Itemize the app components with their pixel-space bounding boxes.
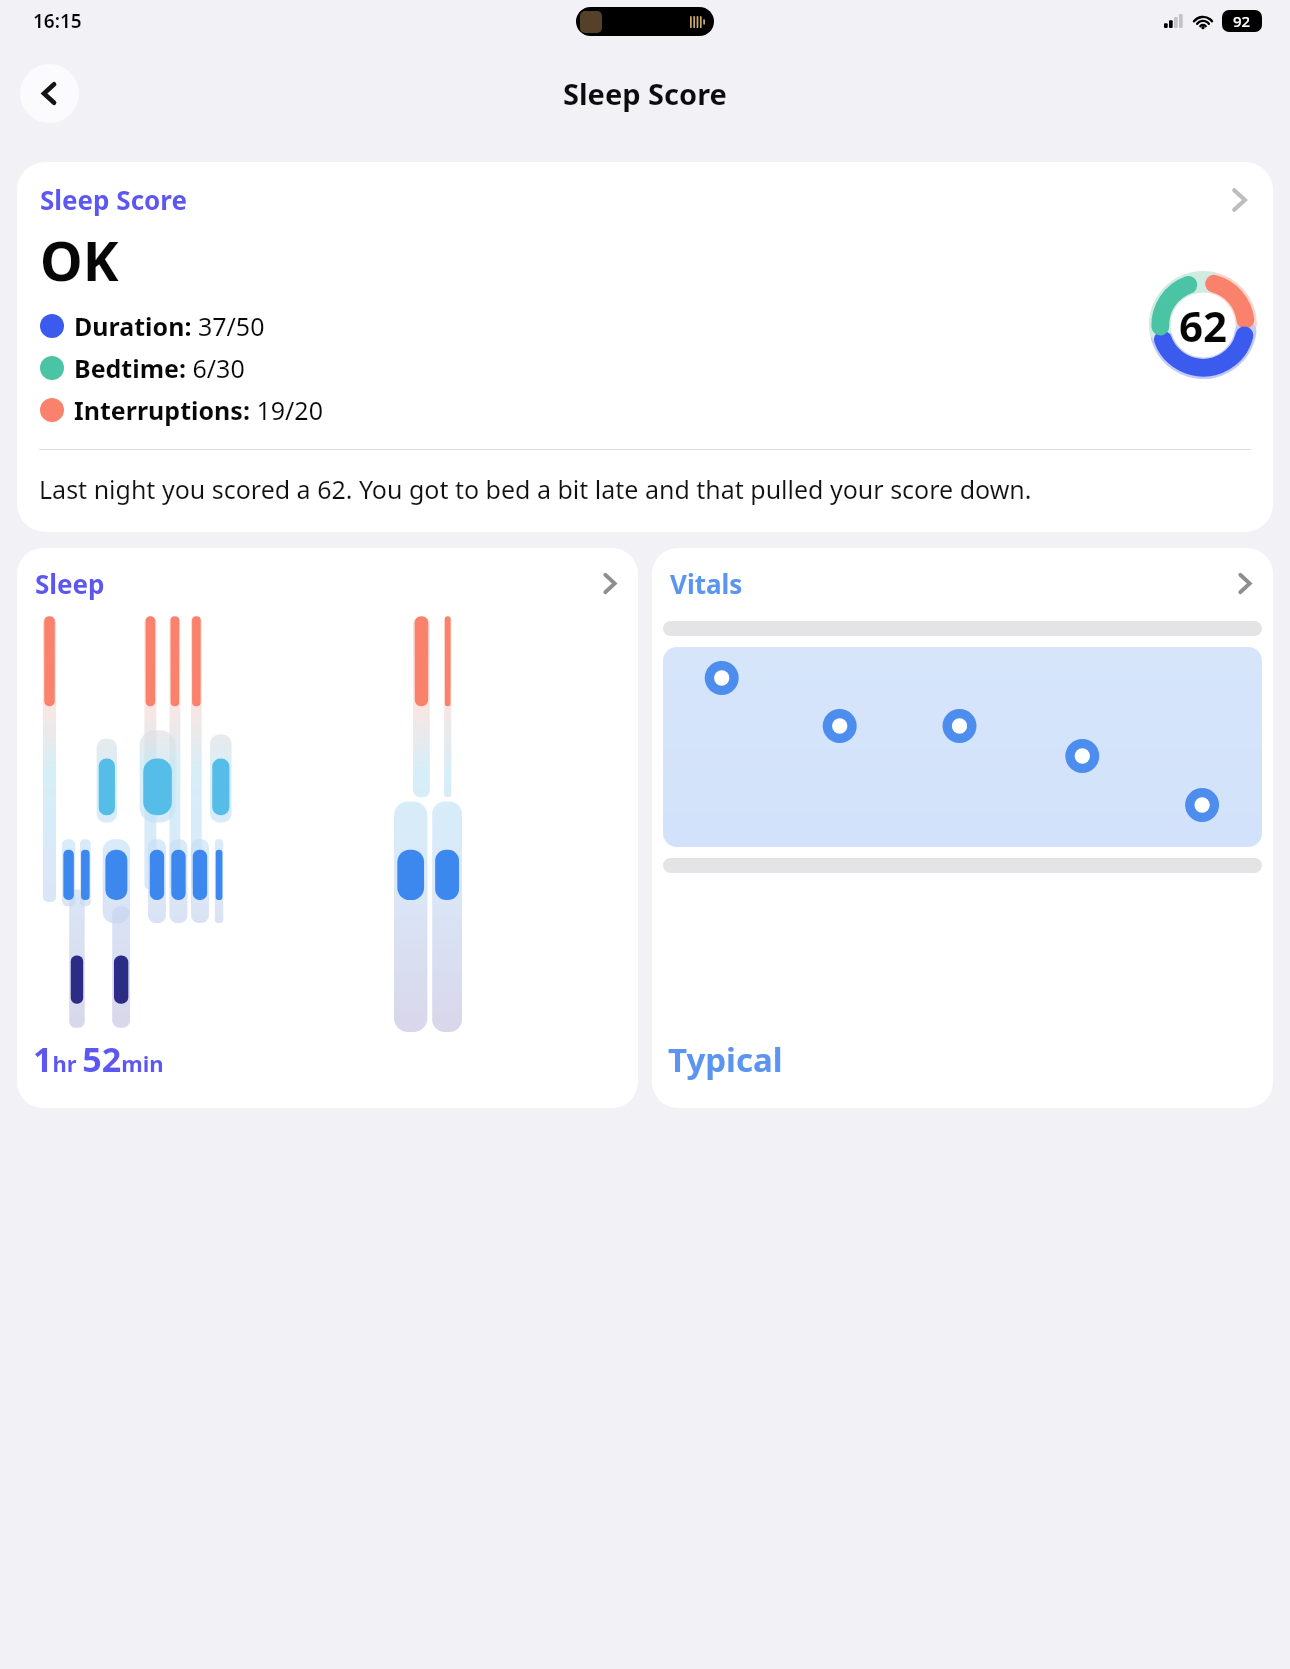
staticText: Sleep Score [40,182,187,217]
staticText: Sleep [35,566,105,601]
staticText: 62 [1179,297,1228,354]
staticText: 1hr 52min [33,1036,164,1082]
button[interactable]: Sleep Score [17,162,1273,532]
staticText: 16:15 [33,8,82,34]
staticText: Bedtime: 6/30 [74,351,245,385]
staticText: Duration: 37/50 [74,309,265,343]
button[interactable]: Sleep [17,548,638,1108]
staticText: Typical [668,1037,783,1082]
staticText: Vitals [670,566,743,601]
staticText: Sleep Score [563,74,727,113]
staticText: 92 [1233,11,1251,31]
button[interactable]: Vitals [652,548,1273,1108]
staticText: OK [40,223,119,297]
button[interactable]: Back [20,64,79,123]
staticText: Last night you scored a 62. You got to b… [39,472,1032,506]
staticText: Interruptions: 19/20 [74,393,323,427]
